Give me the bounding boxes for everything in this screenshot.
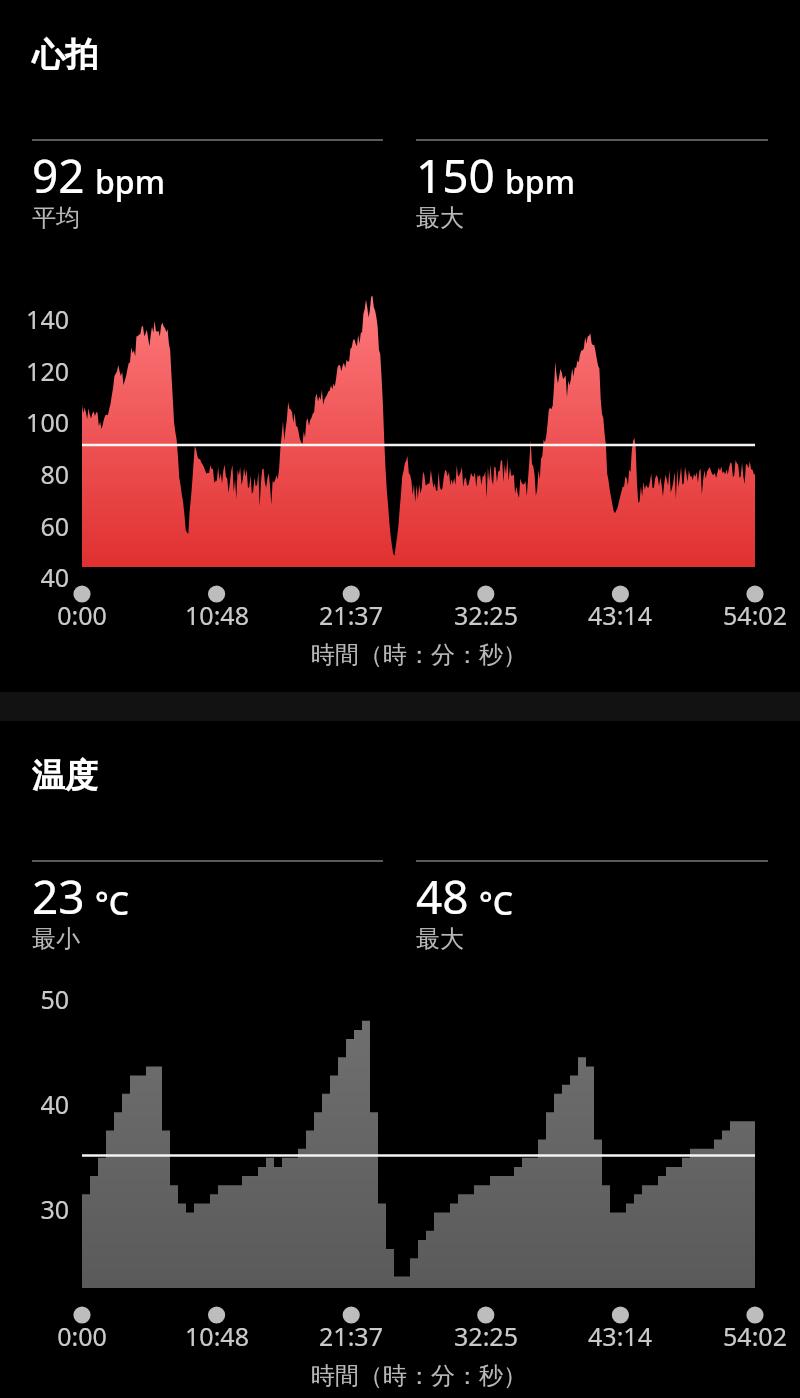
- staticText: 32:25: [416, 1319, 556, 1353]
- staticText: 54:02: [685, 598, 800, 632]
- staticText: 48: [416, 865, 469, 928]
- staticText: 最大: [416, 924, 464, 954]
- staticText: 温度: [32, 755, 98, 797]
- staticText: 50: [0, 982, 69, 1016]
- staticText: 10:48: [147, 598, 287, 632]
- staticText: 0:00: [12, 1319, 152, 1353]
- staticText: 120: [0, 354, 69, 388]
- staticText: 心拍: [32, 34, 98, 76]
- staticText: 92: [32, 144, 85, 207]
- staticText: 30: [0, 1192, 69, 1226]
- staticText: 最小: [32, 924, 80, 954]
- staticText: 140: [0, 302, 69, 336]
- button[interactable]: 23: [32, 860, 383, 958]
- staticText: bpm: [505, 160, 575, 204]
- staticText: 0:00: [12, 598, 152, 632]
- staticText: 最大: [416, 203, 464, 233]
- staticText: 10:48: [147, 1319, 287, 1353]
- staticText: 54:02: [685, 1319, 800, 1353]
- staticText: 平均: [32, 203, 80, 233]
- staticText: 150: [416, 144, 495, 207]
- staticText: bpm: [95, 160, 165, 204]
- staticText: 21:37: [281, 1319, 421, 1353]
- button[interactable]: 92: [32, 139, 383, 237]
- staticText: 60: [0, 509, 69, 543]
- staticText: 40: [0, 560, 69, 594]
- staticText: 21:37: [281, 598, 421, 632]
- staticText: 80: [0, 457, 69, 491]
- button[interactable]: 150: [416, 139, 768, 237]
- button[interactable]: 48: [416, 860, 768, 958]
- staticText: 43:14: [550, 1319, 690, 1353]
- staticText: °C: [95, 881, 129, 925]
- staticText: 40: [0, 1087, 69, 1121]
- staticText: 43:14: [550, 598, 690, 632]
- staticText: 時間（時：分：秒）: [209, 640, 629, 670]
- staticText: 100: [0, 405, 69, 439]
- staticText: 時間（時：分：秒）: [209, 1361, 629, 1391]
- staticText: 23: [32, 865, 85, 928]
- staticText: 32:25: [416, 598, 556, 632]
- staticText: °C: [479, 881, 513, 925]
